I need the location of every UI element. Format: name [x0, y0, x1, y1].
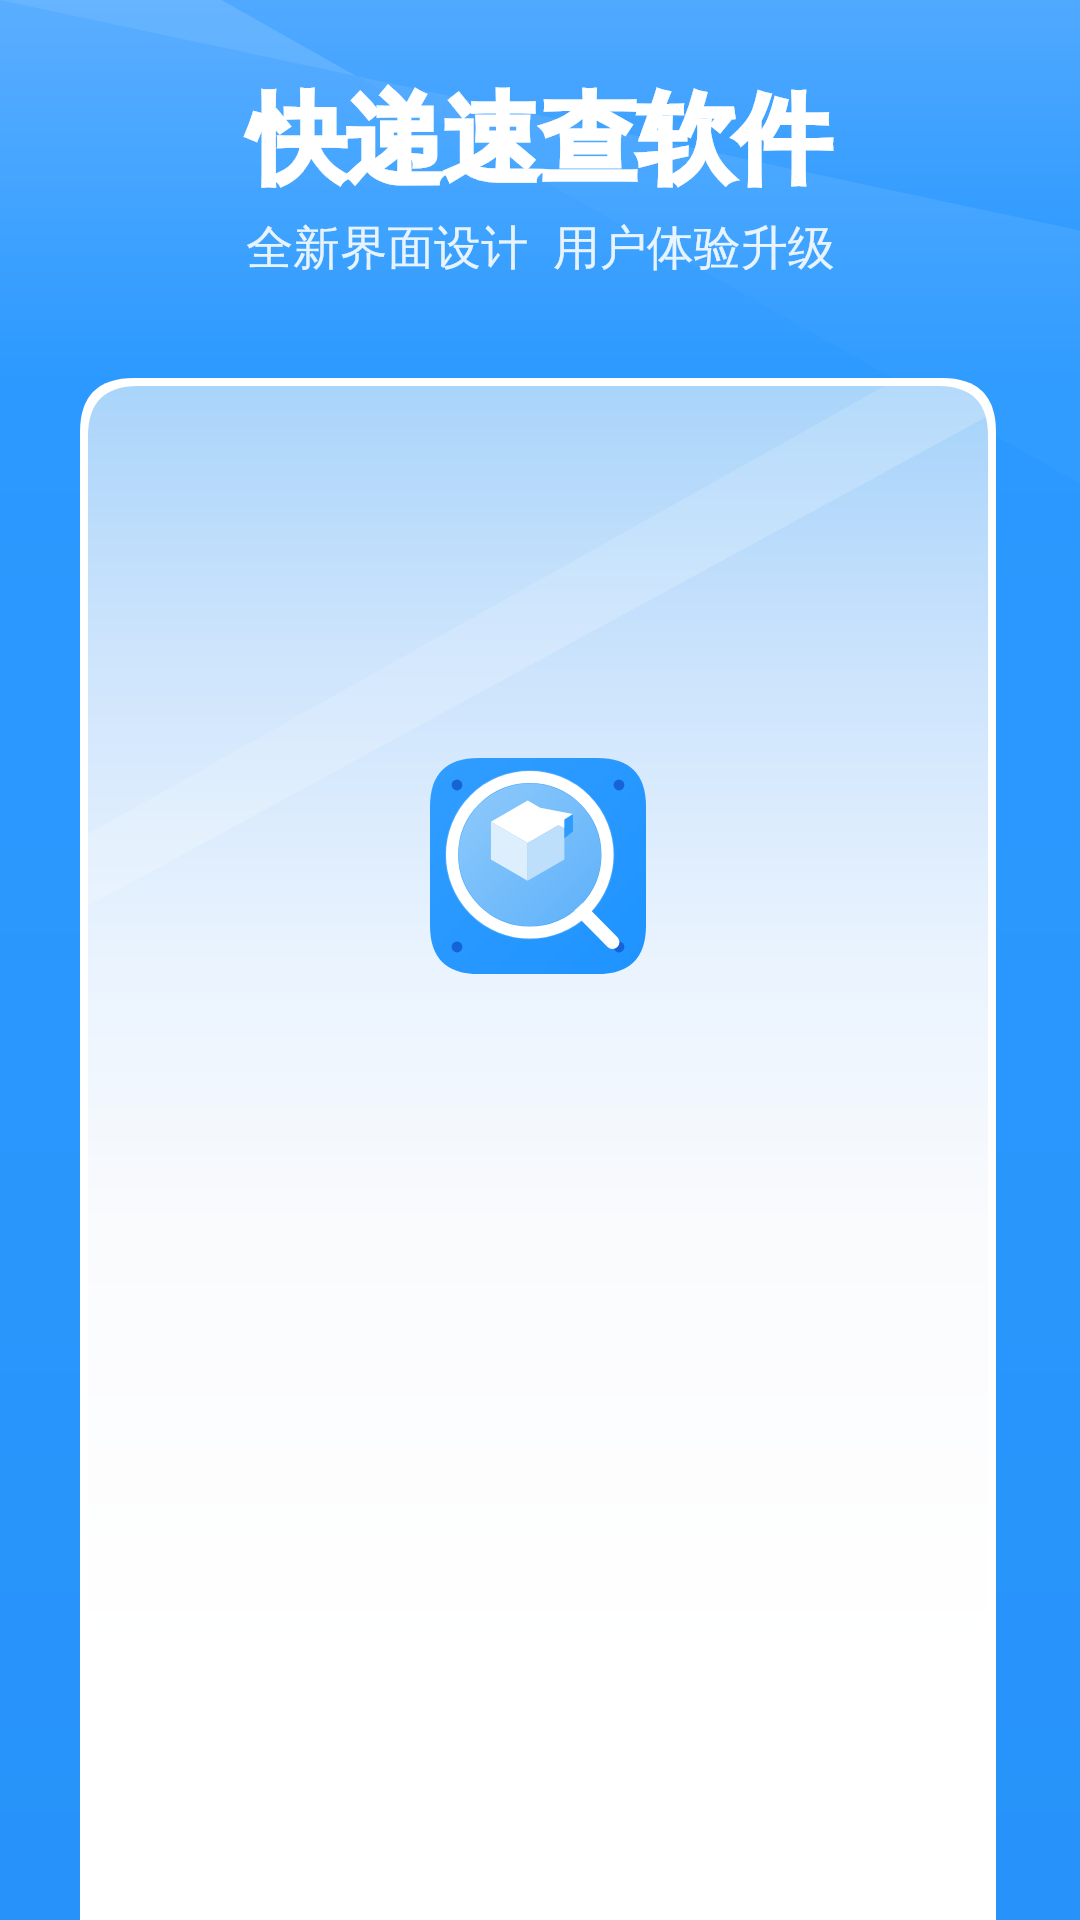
staticText: 快递速查软件	[249, 80, 831, 202]
staticText: 全新界面设计 用户体验升级	[246, 214, 835, 278]
button[interactable]: 快递速查软件 预览	[0, 0, 1080, 1920]
